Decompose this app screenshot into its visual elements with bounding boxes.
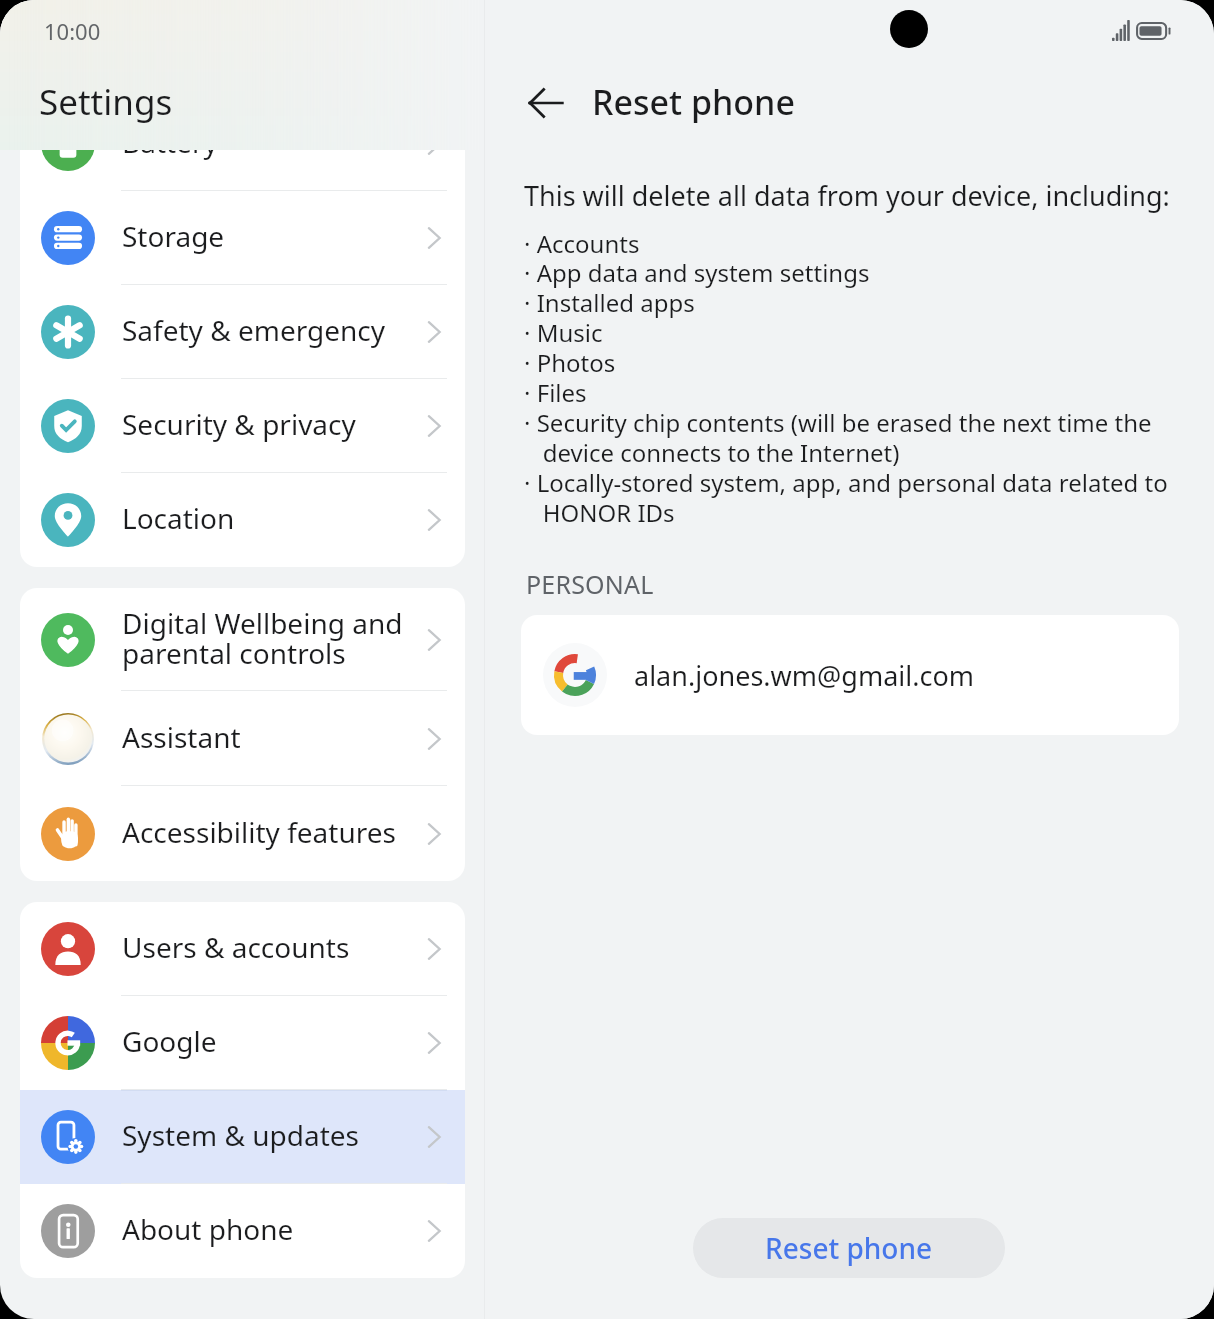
button[interactable]: Assistant	[20, 691, 465, 786]
staticText: Security & privacy	[122, 405, 356, 443]
button[interactable]: System & updates	[20, 1090, 465, 1184]
staticText: Reset phone	[592, 79, 795, 125]
button[interactable]: About phone	[20, 1184, 465, 1278]
staticText: This will delete all data from your devi…	[524, 177, 1170, 214]
staticText: Location	[122, 499, 235, 537]
button[interactable]: Security & privacy	[20, 379, 465, 473]
staticText: alan.jones.wm@gmail.com	[634, 657, 975, 694]
button[interactable]: Digital Wellbeing and parental controls	[20, 588, 465, 691]
staticText: PERSONAL	[526, 567, 654, 601]
button[interactable]: Location	[20, 473, 465, 567]
staticText: Settings	[39, 78, 173, 126]
staticText: Accessibility features	[122, 813, 396, 851]
staticText: Digital Wellbeing and parental controls	[122, 604, 403, 672]
staticText: Battery	[122, 123, 218, 161]
staticText: Google	[122, 1022, 217, 1060]
button[interactable]: Back	[521, 78, 571, 128]
button[interactable]: Reset phone	[693, 1218, 1005, 1278]
staticText: · Accounts · App data and system setting…	[524, 227, 1168, 529]
staticText: Reset phone	[765, 1229, 933, 1267]
staticText: Safety & emergency	[122, 311, 386, 349]
button[interactable]: Safety & emergency	[20, 285, 465, 379]
button[interactable]: Storage	[20, 191, 465, 285]
staticText: System & updates	[122, 1116, 359, 1154]
staticText: About phone	[122, 1210, 294, 1248]
button[interactable]: Users & accounts	[20, 902, 465, 996]
button[interactable]: Google	[20, 996, 465, 1090]
button[interactable]: Battery	[20, 97, 465, 191]
staticText: 10:00	[44, 16, 101, 46]
button[interactable]: Accessibility features	[20, 786, 465, 881]
staticText: Storage	[122, 217, 225, 255]
staticText: Assistant	[122, 718, 241, 756]
staticText: Users & accounts	[122, 928, 350, 966]
button[interactable]: alan.jones.wm@gmail.com	[521, 615, 1179, 735]
